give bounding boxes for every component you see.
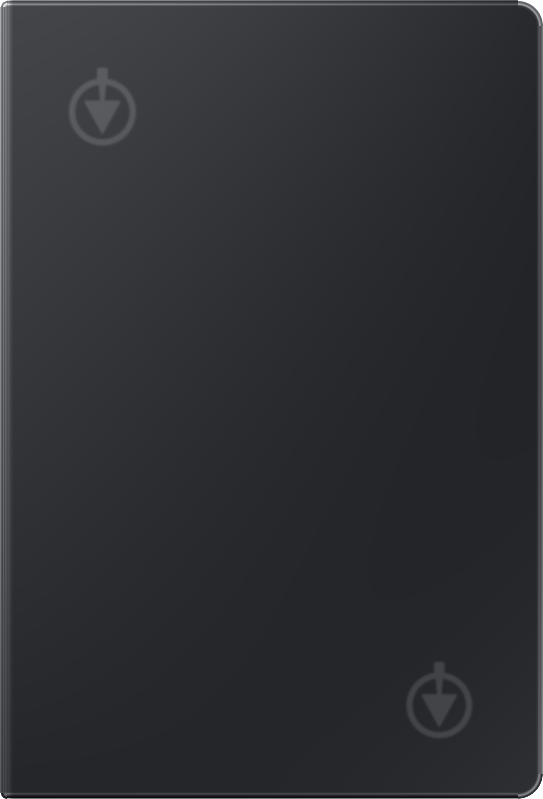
button[interactable]: Tablet book cover, dark grey [0,0,543,799]
